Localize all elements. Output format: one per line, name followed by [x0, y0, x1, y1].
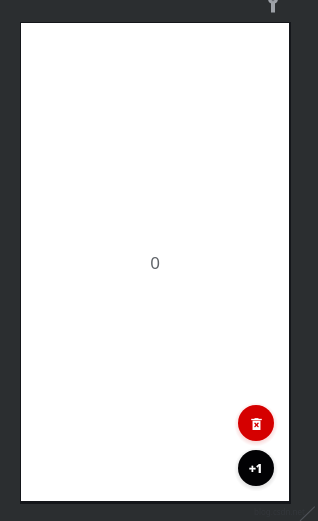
staticText: 0 — [150, 251, 160, 274]
staticText: +1 — [249, 460, 263, 476]
button[interactable]: Increment counter — [238, 450, 274, 486]
button[interactable]: Delete all — [238, 405, 274, 441]
